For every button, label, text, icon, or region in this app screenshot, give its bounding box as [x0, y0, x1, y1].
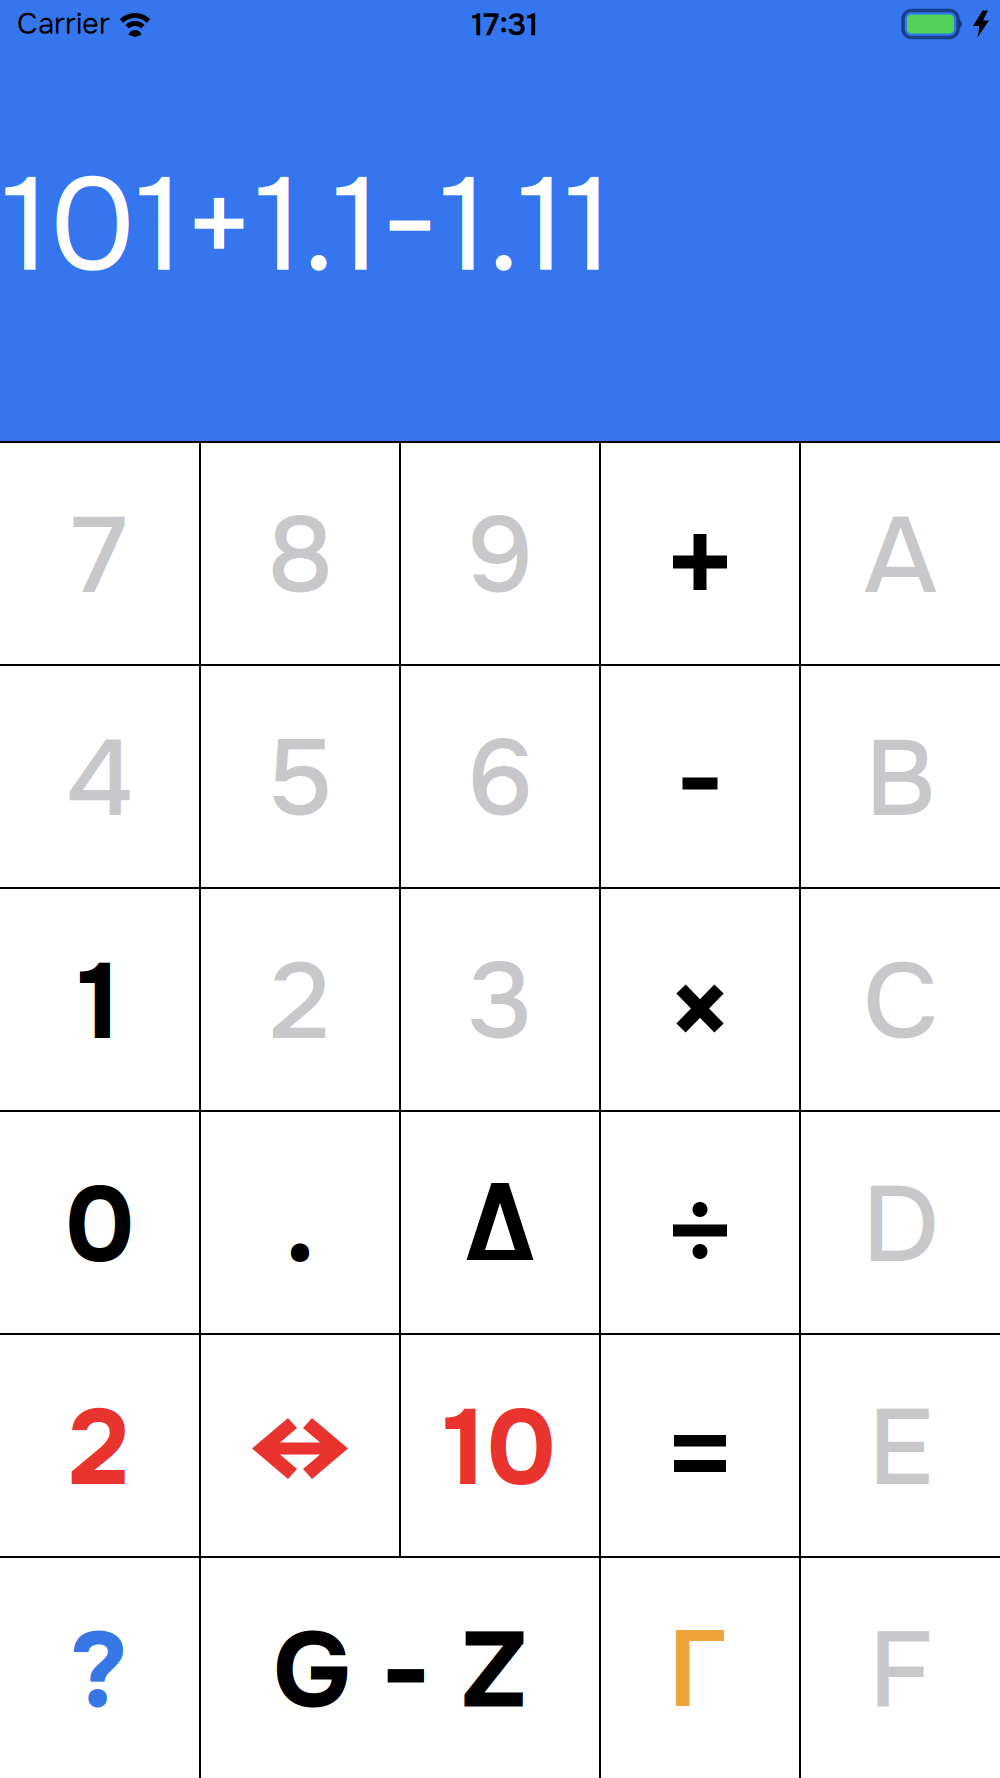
- button[interactable]: 10: [401, 1335, 599, 1556]
- button[interactable]: 0: [0, 1112, 199, 1333]
- button[interactable]: 8: [201, 443, 399, 664]
- button[interactable]: Minus: [601, 666, 799, 887]
- staticText: 9: [467, 488, 533, 624]
- button[interactable]: Equals: [601, 1335, 799, 1556]
- staticText: 4: [65, 711, 133, 847]
- button[interactable]: 4: [0, 666, 199, 887]
- button[interactable]: 3: [401, 889, 599, 1110]
- staticText: 5: [267, 711, 333, 847]
- staticText: E: [868, 1380, 933, 1516]
- button[interactable]: Multiply: [601, 889, 799, 1110]
- button[interactable]: A: [801, 443, 1000, 664]
- staticText: .: [285, 1157, 315, 1293]
- staticText: D: [862, 1157, 939, 1293]
- button[interactable]: 7: [0, 443, 199, 664]
- button[interactable]: E: [801, 1335, 1000, 1556]
- button[interactable]: 2: [201, 889, 399, 1110]
- staticText: 0: [64, 1157, 134, 1293]
- staticText: 10: [444, 1380, 556, 1516]
- button[interactable]: F: [801, 1558, 1000, 1778]
- staticText: 7: [72, 488, 126, 624]
- staticText: G - Z: [273, 1603, 527, 1739]
- button[interactable]: 9: [401, 443, 599, 664]
- button[interactable]: C: [801, 889, 1000, 1110]
- staticText: 101+1.1-1.11: [2, 143, 612, 310]
- staticText: 6: [467, 711, 533, 847]
- staticText: ?: [71, 1603, 128, 1739]
- button[interactable]: 5: [201, 666, 399, 887]
- staticText: 8: [267, 488, 333, 624]
- staticText: 2: [270, 934, 330, 1070]
- staticText: Carrier: [17, 5, 110, 43]
- button[interactable]: Swap conversion direction: [201, 1335, 399, 1556]
- button[interactable]: 1: [0, 889, 199, 1110]
- button[interactable]: B: [801, 666, 1000, 887]
- button[interactable]: G - Z: [201, 1558, 599, 1778]
- button[interactable]: .: [201, 1112, 399, 1333]
- button[interactable]: Divide: [601, 1112, 799, 1333]
- staticText: 3: [468, 934, 532, 1070]
- button[interactable]: Gamma: [601, 1558, 799, 1778]
- button[interactable]: 6: [401, 666, 599, 887]
- staticText: 17:31: [471, 5, 538, 44]
- button[interactable]: D: [801, 1112, 1000, 1333]
- staticText: 2: [69, 1380, 129, 1516]
- staticText: A: [864, 488, 937, 624]
- button[interactable]: ?: [0, 1558, 199, 1778]
- staticText: F: [868, 1603, 932, 1739]
- button[interactable]: Plus: [601, 443, 799, 664]
- button[interactable]: 2: [0, 1335, 199, 1556]
- staticText: B: [865, 711, 936, 847]
- staticText: C: [863, 934, 938, 1070]
- button[interactable]: Delta: [401, 1112, 599, 1333]
- staticText: 1: [78, 934, 120, 1070]
